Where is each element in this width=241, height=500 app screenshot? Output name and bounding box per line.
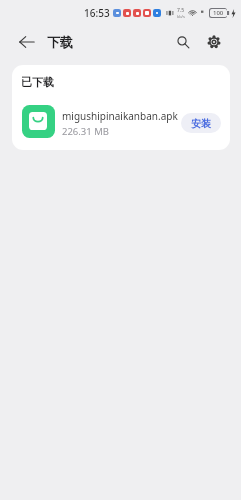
- staticText: 下载: [47, 34, 73, 50]
- staticText: 安装: [191, 117, 211, 130]
- button[interactable]: migushipinaikanban.apk: [12, 97, 230, 145]
- staticText: 100: [213, 9, 224, 17]
- staticText: 16:53: [84, 6, 110, 20]
- staticText: 已下载: [21, 75, 54, 89]
- staticText: kb/s: [177, 14, 185, 19]
- button[interactable]: Search: [167, 25, 198, 58]
- button[interactable]: Back: [0, 25, 41, 58]
- staticText: 226.31 MB: [62, 125, 109, 138]
- staticText: 7.5: [177, 7, 185, 14]
- button[interactable]: Settings: [198, 25, 229, 58]
- button[interactable]: 安装: [181, 113, 221, 133]
- staticText: migushipinaikanban.apk: [62, 109, 178, 123]
